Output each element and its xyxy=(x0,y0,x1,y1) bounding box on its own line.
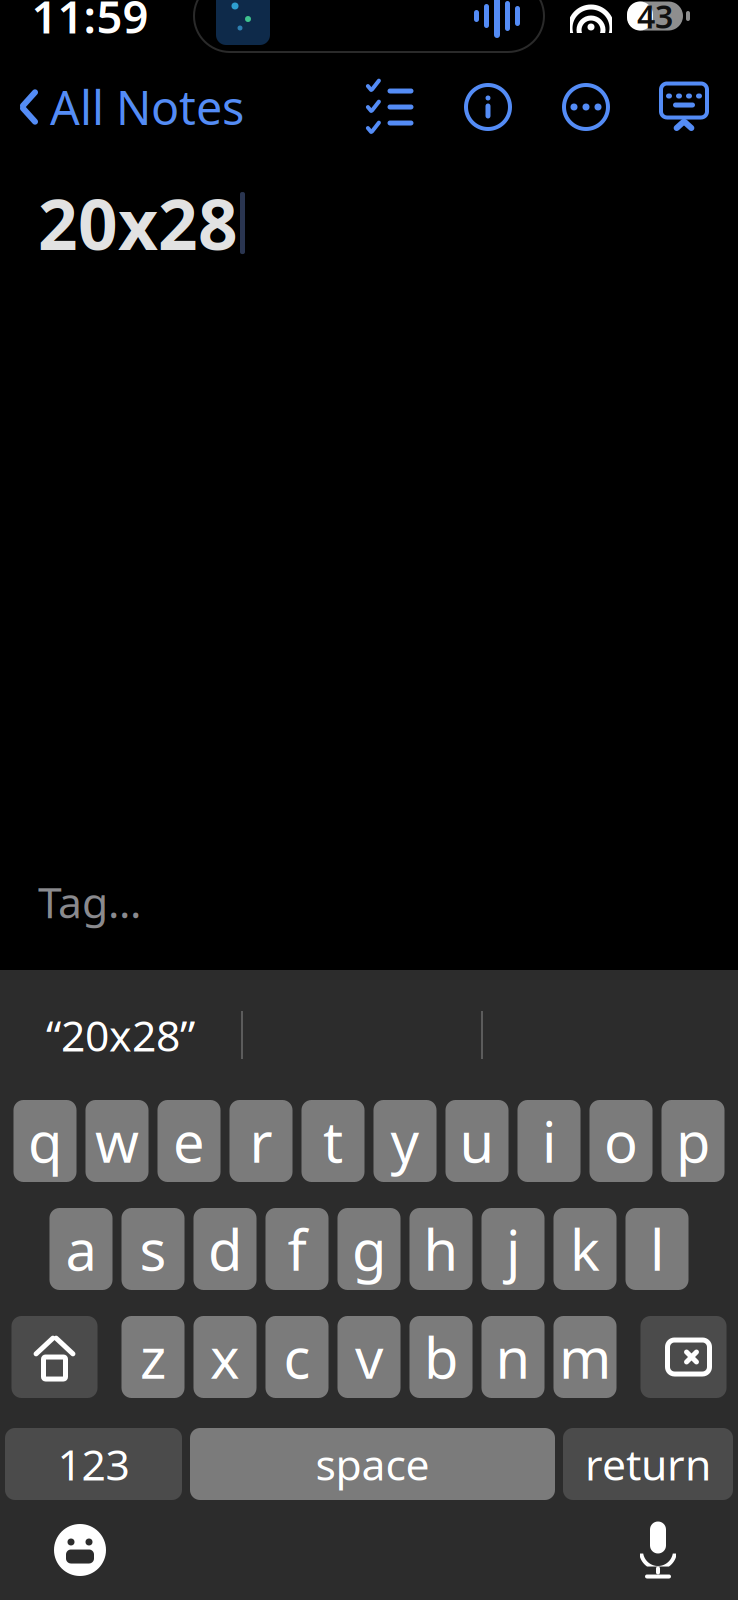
button[interactable]: d xyxy=(193,1208,256,1290)
staticText: z xyxy=(140,1320,166,1394)
button[interactable]: “20x28” xyxy=(0,1004,241,1066)
staticText: f xyxy=(287,1212,306,1286)
button[interactable]: Emoji xyxy=(52,1522,108,1578)
button[interactable]: l xyxy=(625,1208,688,1290)
button[interactable]: x xyxy=(193,1316,256,1398)
staticText: l xyxy=(650,1212,664,1286)
button[interactable]: b xyxy=(409,1316,472,1398)
staticText: 11:59 xyxy=(31,0,148,46)
staticText: i xyxy=(542,1104,556,1178)
staticText: d xyxy=(208,1212,242,1286)
staticText: o xyxy=(604,1104,638,1178)
staticText: y xyxy=(390,1104,419,1178)
staticText: All Notes xyxy=(50,76,244,138)
staticText: space xyxy=(315,1436,429,1492)
staticText: v xyxy=(355,1320,383,1394)
staticText: 43 xyxy=(637,0,673,37)
button[interactable]: u xyxy=(445,1100,508,1182)
staticText: a xyxy=(65,1212,96,1286)
button[interactable]: n xyxy=(481,1316,544,1398)
button[interactable]: g xyxy=(337,1208,400,1290)
button[interactable]: Shift xyxy=(11,1316,97,1398)
button[interactable]: r xyxy=(229,1100,292,1182)
button[interactable]: q xyxy=(13,1100,76,1182)
staticText: c xyxy=(283,1320,310,1394)
staticText: e xyxy=(173,1104,205,1178)
button[interactable]: Hide Keyboard xyxy=(654,81,714,133)
button[interactable]: Checklist xyxy=(360,81,420,133)
button[interactable]: y xyxy=(373,1100,436,1182)
staticText: 123 xyxy=(57,1436,129,1492)
button[interactable]: z xyxy=(121,1316,184,1398)
staticText: b xyxy=(424,1320,458,1394)
button[interactable]: i xyxy=(517,1100,580,1182)
button[interactable]: space xyxy=(190,1428,555,1500)
staticText: t xyxy=(323,1104,343,1178)
staticText: q xyxy=(28,1104,62,1178)
staticText: p xyxy=(676,1104,710,1178)
staticText: return xyxy=(585,1436,711,1492)
button[interactable]: a xyxy=(49,1208,112,1290)
button[interactable]: w xyxy=(85,1100,148,1182)
staticText: h xyxy=(423,1212,458,1286)
button[interactable]: return xyxy=(563,1428,733,1500)
staticText: m xyxy=(559,1320,611,1394)
button[interactable]: j xyxy=(481,1208,544,1290)
staticText: w xyxy=(95,1104,139,1178)
staticText: u xyxy=(459,1104,494,1178)
button[interactable]: f xyxy=(265,1208,328,1290)
staticText: j xyxy=(506,1212,520,1286)
button[interactable]: e xyxy=(157,1100,220,1182)
button[interactable]: v xyxy=(337,1316,400,1398)
button[interactable]: 123 xyxy=(5,1428,182,1500)
button[interactable]: All Notes xyxy=(0,66,262,148)
staticText: x xyxy=(210,1320,240,1394)
button[interactable]: p xyxy=(661,1100,724,1182)
staticText: g xyxy=(352,1212,386,1286)
staticText: n xyxy=(495,1320,530,1394)
button[interactable]: t xyxy=(301,1100,364,1182)
button[interactable]: s xyxy=(121,1208,184,1290)
staticText: 20x28 xyxy=(38,177,238,269)
staticText: k xyxy=(570,1212,600,1286)
button[interactable]: m xyxy=(553,1316,616,1398)
button[interactable]: Dictate xyxy=(630,1522,686,1578)
button[interactable]: o xyxy=(589,1100,652,1182)
staticText: r xyxy=(249,1104,272,1178)
button[interactable]: k xyxy=(553,1208,616,1290)
button[interactable]: Delete xyxy=(640,1316,726,1398)
button[interactable]: c xyxy=(265,1316,328,1398)
button[interactable]: Info xyxy=(458,81,518,133)
button[interactable]: More xyxy=(556,81,616,133)
button[interactable]: h xyxy=(409,1208,472,1290)
staticText: Tag... xyxy=(38,873,141,930)
staticText: s xyxy=(139,1212,166,1286)
staticText: “20x28” xyxy=(46,1007,195,1063)
